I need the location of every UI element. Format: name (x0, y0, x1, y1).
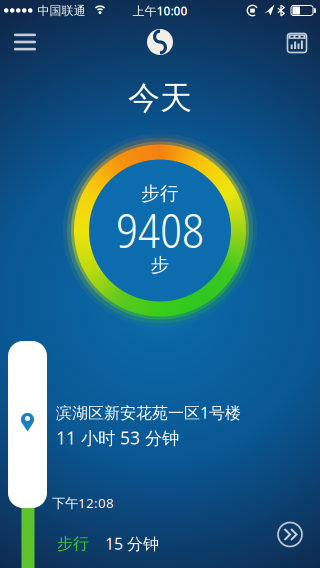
staticText: 中国联通 (37, 3, 85, 18)
button[interactable]: Expand (278, 522, 302, 546)
staticText: 上午10:00 (132, 3, 187, 19)
staticText: 步行 (141, 182, 179, 205)
button[interactable]: 步行 (57, 533, 159, 554)
staticText: 下午12:08 (52, 494, 114, 512)
button[interactable]: Statistics (282, 28, 311, 57)
staticText: 11 小时 53 分钟 (56, 426, 179, 449)
staticText: 步行 (57, 534, 89, 553)
button[interactable]: Menu (8, 28, 42, 56)
staticText: 15 分钟 (105, 533, 159, 554)
staticText: 滨湖区新安花苑一区1号楼 (56, 402, 241, 423)
staticText: 9408 (116, 197, 204, 262)
staticText: 步 (150, 253, 169, 276)
button[interactable]: 滨湖区新安花苑一区1号楼 (56, 402, 241, 449)
staticText: 今天 (128, 78, 192, 118)
